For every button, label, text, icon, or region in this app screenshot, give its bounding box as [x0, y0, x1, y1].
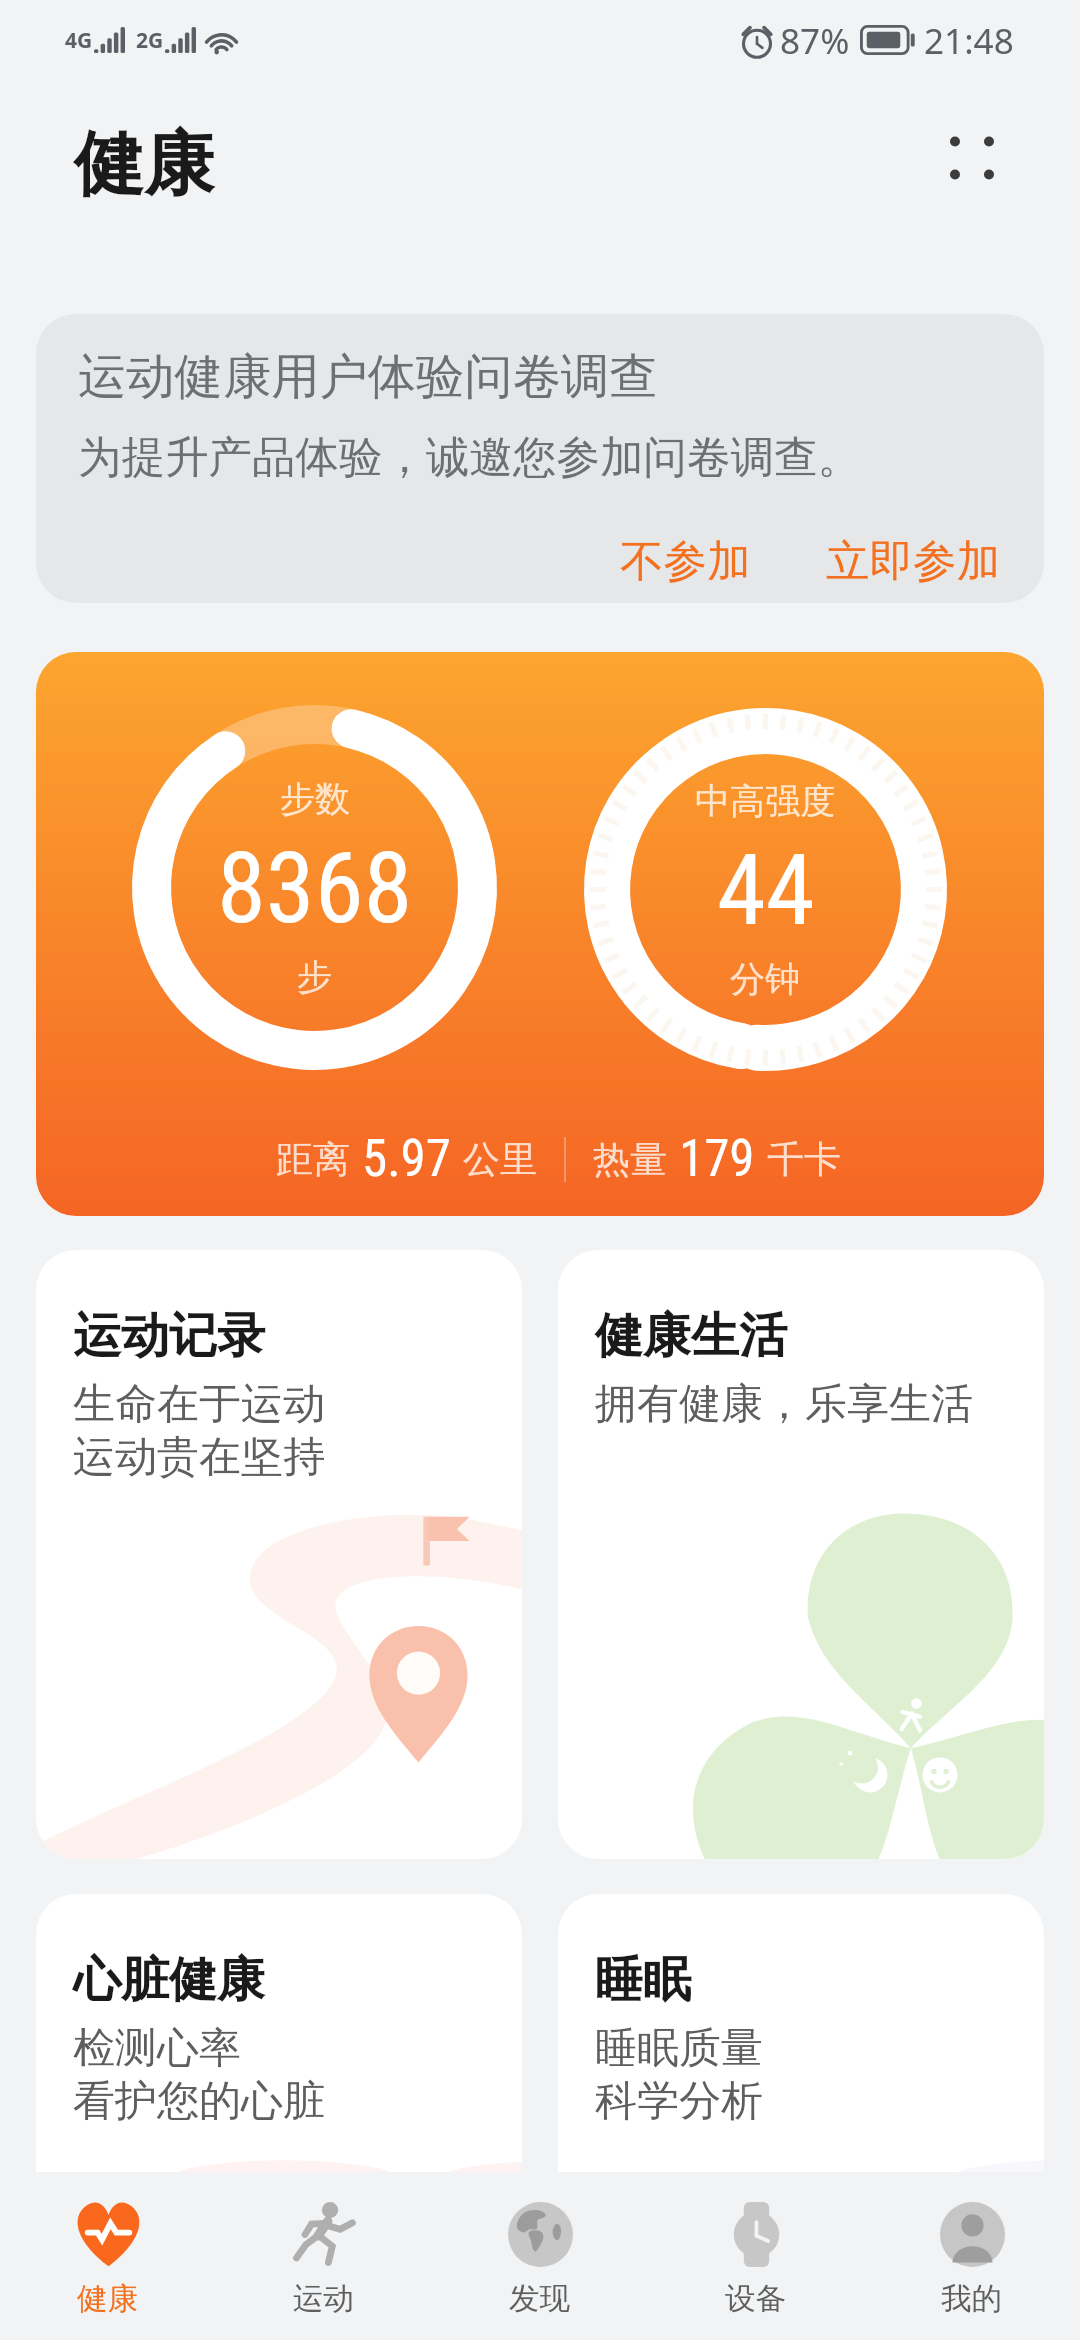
staticText: 公里 — [463, 1136, 537, 1182]
staticText: 运动记录 — [73, 1306, 265, 1366]
staticText: 运动健康用户体验问卷调查 — [78, 346, 658, 407]
staticText: 2G — [136, 26, 164, 55]
staticText: 步 — [297, 955, 333, 999]
button[interactable]: 运动健康用户体验问卷调查 — [36, 314, 1044, 603]
staticText: 科学分析 — [595, 2075, 763, 2128]
staticText: 健康 — [74, 121, 214, 209]
staticText: 千卡 — [767, 1136, 841, 1182]
button[interactable]: 健康生活 — [558, 1250, 1044, 1859]
button[interactable]: 心脏健康 — [36, 1894, 522, 2340]
staticText: 睡眠质量 — [595, 2022, 763, 2075]
button[interactable]: 发现 — [432, 2172, 648, 2340]
staticText: 4G — [65, 26, 93, 55]
button[interactable]: 设备 — [648, 2172, 864, 2340]
button[interactable]: 立即参加 — [802, 519, 1024, 603]
staticText: 距离 — [276, 1136, 350, 1182]
staticText: 8368 — [217, 830, 413, 946]
staticText: 热量 — [593, 1136, 667, 1182]
button[interactable]: 睡眠 — [558, 1894, 1044, 2340]
staticText: 为提升产品体验，诚邀您参加问卷调查。 — [78, 430, 861, 485]
staticText: 设备 — [725, 2280, 787, 2319]
button[interactable]: More options — [900, 86, 1044, 230]
button[interactable]: 不参加 — [596, 519, 775, 603]
staticText: 运动 — [293, 2280, 355, 2319]
staticText: 中高强度 — [695, 779, 836, 823]
staticText: 看护您的心脏 — [73, 2075, 325, 2128]
staticText: 生命在于运动 — [73, 1378, 325, 1431]
staticText: 21:48 — [924, 16, 1014, 64]
staticText: 立即参加 — [826, 534, 1000, 588]
button[interactable]: 运动记录 — [36, 1250, 522, 1859]
staticText: 检测心率 — [73, 2022, 241, 2075]
staticText: 不参加 — [620, 534, 751, 588]
staticText: 179 — [679, 1129, 755, 1189]
button[interactable]: 健康 — [0, 2172, 216, 2340]
staticText: 87% — [780, 16, 850, 64]
staticText: 睡眠 — [595, 1950, 691, 2010]
staticText: 我的 — [941, 2280, 1003, 2319]
staticText: 5.97 — [362, 1129, 451, 1189]
button[interactable]: 运动 — [216, 2172, 432, 2340]
staticText: 44 — [717, 832, 815, 948]
staticText: 心脏健康 — [73, 1950, 265, 2010]
staticText: 步数 — [280, 777, 351, 821]
staticText: 健康 — [77, 2280, 139, 2319]
staticText: 运动贵在坚持 — [73, 1431, 325, 1484]
button[interactable]: 步数 — [36, 652, 1044, 1216]
staticText: 拥有健康，乐享生活 — [595, 1378, 973, 1431]
staticText: 分钟 — [730, 957, 801, 1001]
button[interactable]: 我的 — [864, 2172, 1080, 2340]
staticText: 健康生活 — [595, 1306, 787, 1366]
staticText: 发现 — [509, 2280, 571, 2319]
